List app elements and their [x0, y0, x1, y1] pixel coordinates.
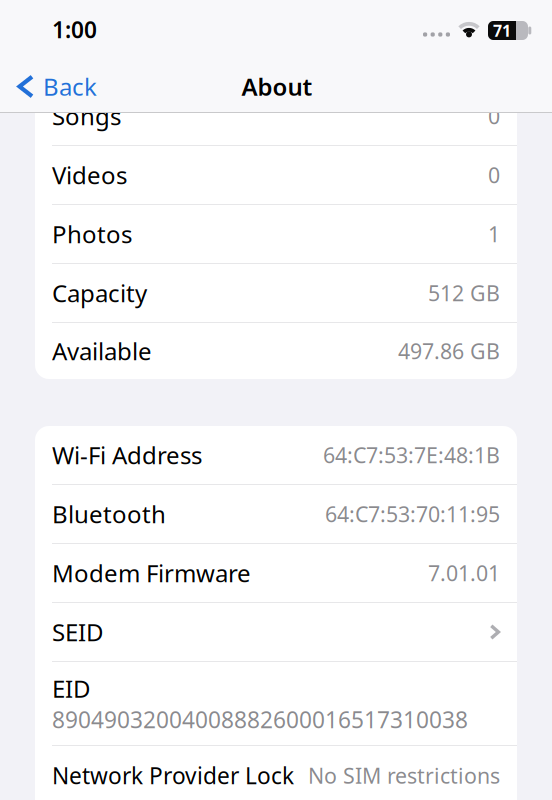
- staticText: 64:C7:53:70:11:95: [325, 500, 500, 528]
- staticText: 71: [493, 20, 511, 41]
- staticText: 64:C7:53:7E:48:1B: [323, 441, 500, 469]
- staticText: Back: [43, 71, 97, 102]
- staticText: 7.01.01: [428, 559, 500, 587]
- staticText: Modem Firmware: [52, 557, 251, 589]
- staticText: 0: [488, 102, 500, 130]
- staticText: 1: [488, 220, 500, 248]
- button[interactable]: Back: [17, 71, 97, 102]
- staticText: SEID: [52, 616, 104, 648]
- staticText: Bluetooth: [52, 498, 166, 530]
- staticText: Network Provider Lock: [52, 760, 294, 790]
- staticText: 497.86 GB: [398, 337, 500, 365]
- staticText: 1:00: [52, 14, 97, 44]
- staticText: 512 GB: [428, 279, 500, 307]
- staticText: No SIM restrictions: [308, 761, 500, 790]
- staticText: Photos: [52, 218, 132, 250]
- button[interactable]: SEID: [35, 603, 517, 661]
- staticText: 89049032004008882600016517310038: [52, 704, 468, 734]
- staticText: 0: [488, 161, 500, 189]
- staticText: Capacity: [52, 277, 147, 309]
- staticText: About: [241, 71, 312, 102]
- staticText: Wi-Fi Address: [52, 439, 202, 471]
- staticText: Songs: [52, 100, 121, 132]
- staticText: Videos: [52, 159, 127, 191]
- staticText: Available: [52, 335, 152, 367]
- staticText: EID: [52, 672, 91, 704]
